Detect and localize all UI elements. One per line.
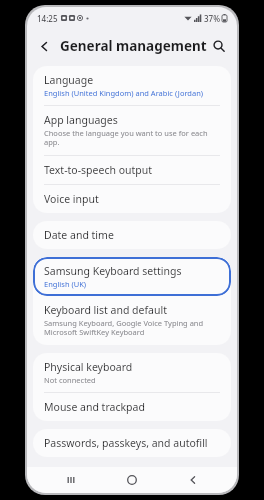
button[interactable]: Back xyxy=(31,33,57,59)
staticText: General management xyxy=(60,37,207,55)
staticText: Samsung Keyboard, Google Voice Typing an… xyxy=(44,318,220,338)
button[interactable]: Physical keyboard xyxy=(33,353,231,392)
staticText: Choose the language you want to use for … xyxy=(44,128,220,148)
button[interactable]: Text-to-speech output xyxy=(33,156,231,184)
staticText: 14:25 xyxy=(37,13,58,24)
staticText: 37% xyxy=(204,13,220,24)
staticText: Text-to-speech output xyxy=(44,163,153,177)
button[interactable]: Home xyxy=(115,467,149,493)
staticText: Voice input xyxy=(44,192,99,206)
button[interactable]: Search xyxy=(207,33,231,59)
button[interactable]: Passwords, passkeys, and autofill xyxy=(33,429,231,457)
button[interactable]: Voice input xyxy=(33,185,231,213)
staticText: English (United Kingdom) and Arabic (Jor… xyxy=(44,88,204,98)
staticText: Not connected xyxy=(44,375,96,385)
staticText: Date and time xyxy=(44,228,114,242)
button[interactable]: Back xyxy=(176,467,210,493)
staticText: English (UK) xyxy=(44,279,87,289)
staticText: Mouse and trackpad xyxy=(44,400,145,414)
staticText: Passwords, passkeys, and autofill xyxy=(44,436,208,450)
staticText: Physical keyboard xyxy=(44,360,133,374)
staticText: Samsung Keyboard settings xyxy=(44,264,182,278)
button[interactable]: Samsung Keyboard settings xyxy=(33,257,231,296)
button[interactable]: Language xyxy=(33,66,231,105)
button[interactable]: Date and time xyxy=(33,221,231,249)
staticText: Language xyxy=(44,73,94,87)
button[interactable]: Mouse and trackpad xyxy=(33,393,231,421)
button[interactable]: Recents xyxy=(54,467,88,493)
button[interactable]: App languages xyxy=(33,106,231,155)
staticText: App languages xyxy=(44,113,118,127)
button[interactable]: Keyboard list and default xyxy=(33,296,231,345)
staticText: Keyboard list and default xyxy=(44,303,167,317)
